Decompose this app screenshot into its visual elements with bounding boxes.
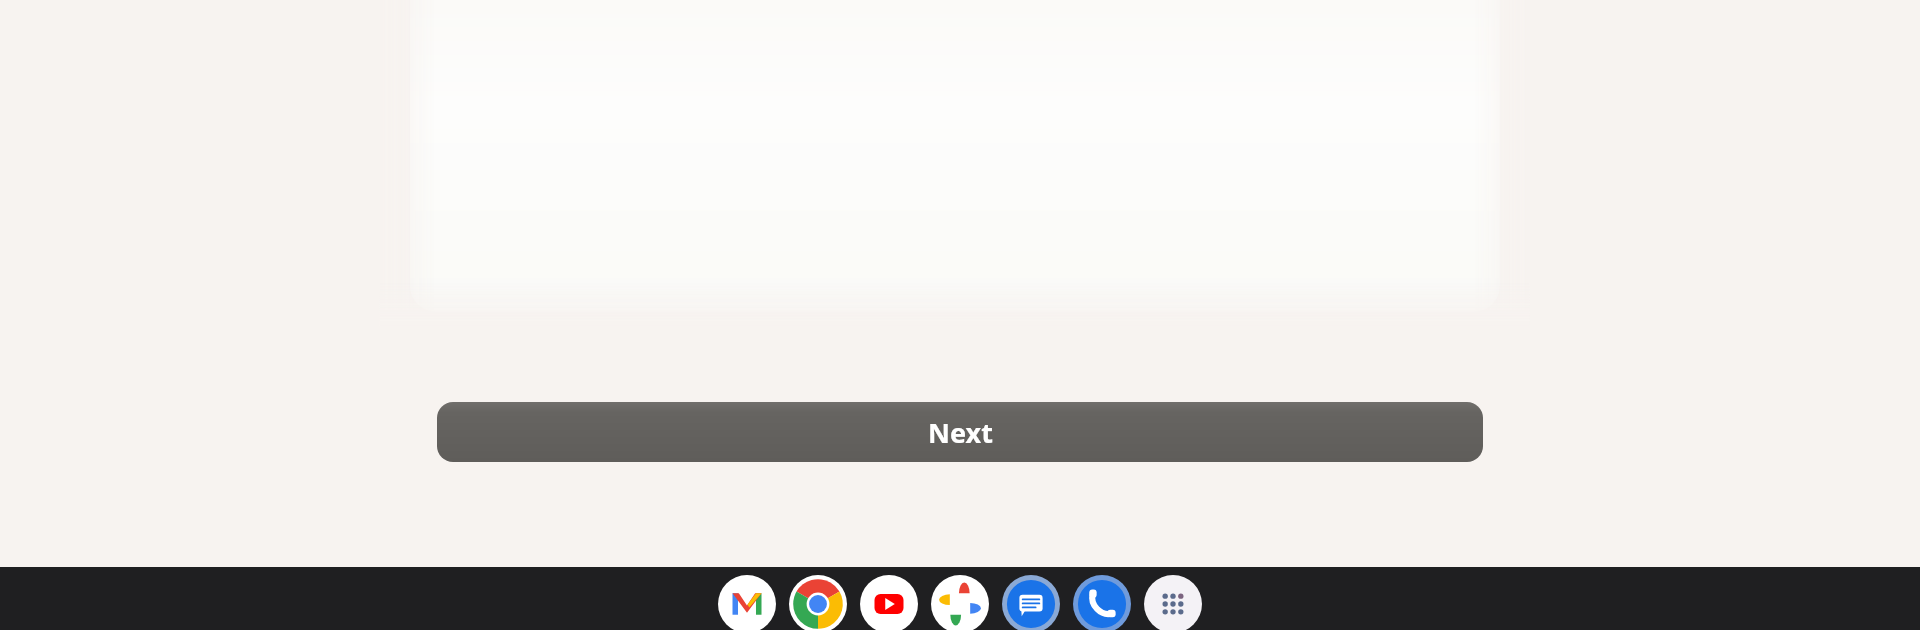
button[interactable]: Phone bbox=[1073, 575, 1131, 630]
button[interactable]: Photos bbox=[931, 575, 989, 630]
button[interactable]: Chrome bbox=[789, 575, 847, 630]
button[interactable]: Messages bbox=[1002, 575, 1060, 630]
button[interactable]: Next bbox=[437, 402, 1483, 462]
button[interactable]: YouTube bbox=[860, 575, 918, 630]
staticText: Next bbox=[928, 414, 993, 451]
button[interactable]: All apps bbox=[1144, 575, 1202, 630]
button[interactable]: Gmail bbox=[718, 575, 776, 630]
